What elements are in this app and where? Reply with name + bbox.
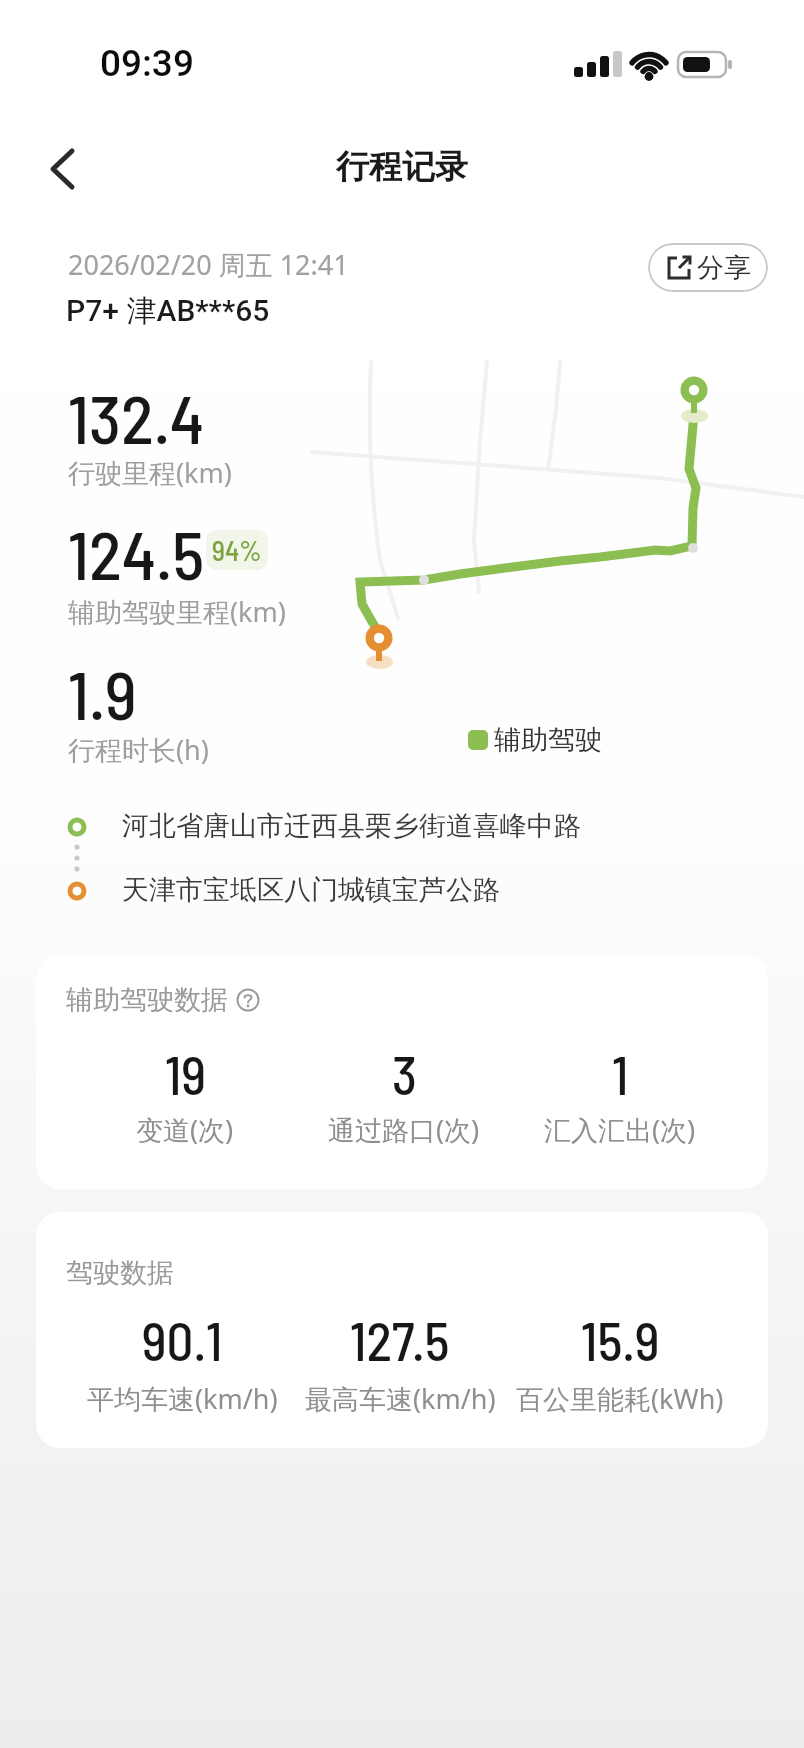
staticText: 15.9 xyxy=(581,1308,660,1372)
staticText: 平均车速(km/h) xyxy=(87,1380,278,1417)
staticText: P7+ 津AB***65 xyxy=(66,292,270,330)
staticText: 行程记录 xyxy=(336,146,468,188)
staticText: 分享 xyxy=(697,251,751,285)
button[interactable]: 分享 xyxy=(648,243,768,292)
staticText: 3 xyxy=(392,1042,417,1106)
button[interactable] xyxy=(236,988,260,1012)
staticText: 行驶里程(km) xyxy=(68,454,232,491)
button[interactable] xyxy=(30,136,96,202)
staticText: 2026/02/20 周五 12:41 xyxy=(68,246,349,283)
staticText: 124.5 xyxy=(68,512,205,594)
staticText: 94% xyxy=(212,533,262,567)
staticText: 辅助驾驶里程(km) xyxy=(68,593,286,630)
staticText: 最高车速(km/h) xyxy=(305,1380,496,1417)
staticText: 河北省唐山市迁西县栗乡街道喜峰中路 xyxy=(122,809,581,843)
staticText: 1.9 xyxy=(68,652,137,734)
staticText: 行程时长(h) xyxy=(68,731,209,768)
staticText: 90.1 xyxy=(142,1308,223,1372)
staticText: 辅助驾驶 xyxy=(494,723,602,757)
staticText: 天津市宝坻区八门城镇宝芦公路 xyxy=(122,873,500,907)
staticText: 汇入汇出(次) xyxy=(544,1111,696,1148)
staticText: 09:39 xyxy=(100,42,194,85)
staticText: 通过路口(次) xyxy=(328,1111,480,1148)
staticText: 变道(次) xyxy=(136,1111,234,1148)
staticText: 127.5 xyxy=(350,1308,450,1372)
staticText: 1 xyxy=(612,1042,629,1106)
staticText: 百公里能耗(kWh) xyxy=(516,1380,724,1417)
staticText: 19 xyxy=(165,1042,206,1106)
staticText: 驾驶数据 xyxy=(66,1256,174,1290)
staticText: 132.4 xyxy=(68,376,205,458)
staticText: 辅助驾驶数据 xyxy=(66,983,228,1017)
